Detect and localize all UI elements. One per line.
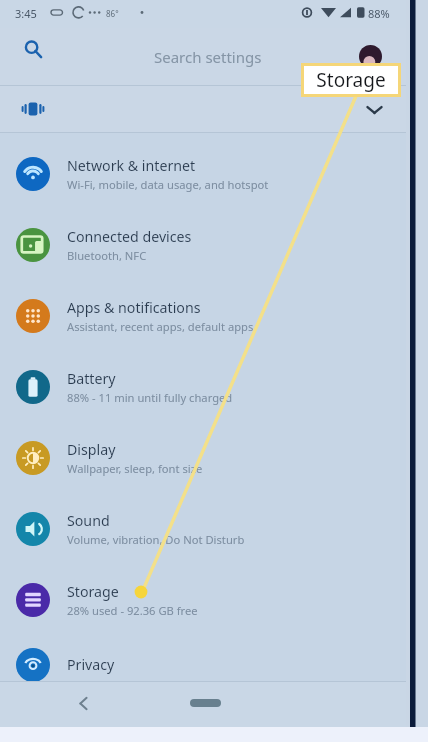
button[interactable]: Expand	[352, 86, 396, 132]
button[interactable]: Network & internet	[0, 138, 428, 209]
staticText: Bluetooth, NFC	[67, 248, 147, 263]
button[interactable]: Privacy	[0, 629, 428, 681]
staticText: Privacy	[67, 655, 115, 674]
staticText: Storage	[316, 67, 386, 93]
staticText: Wi-Fi, mobile, data usage, and hotspot	[67, 177, 269, 192]
staticText: Wallpaper, sleep, font size	[67, 461, 203, 476]
staticText: 86°	[106, 8, 119, 19]
staticText: Search settings	[154, 47, 262, 67]
button[interactable]: Connected devices	[0, 209, 428, 280]
button[interactable]: Storage	[0, 564, 428, 635]
button[interactable]: Vibration	[12, 86, 54, 132]
button[interactable]: Display	[0, 422, 428, 493]
button[interactable]: Battery	[0, 351, 428, 422]
button[interactable]: Apps & notifications	[0, 280, 428, 351]
staticText: 88% - 11 min until fully charged	[67, 390, 233, 405]
button[interactable]: Back	[63, 683, 103, 723]
button[interactable]: Account	[348, 28, 392, 85]
staticText: Storage	[67, 582, 119, 601]
staticText: 88%	[368, 6, 390, 21]
staticText: Battery	[67, 369, 116, 388]
staticText: Apps & notifications	[67, 298, 201, 317]
button[interactable]: Sound	[0, 493, 428, 564]
staticText: Connected devices	[67, 227, 192, 246]
staticText: Volume, vibration, Do Not Disturb	[67, 532, 245, 547]
staticText: Assistant, recent apps, default apps	[67, 319, 254, 334]
staticText: Display	[67, 440, 116, 459]
staticText: 3:45	[15, 6, 37, 21]
staticText: Network & internet	[67, 156, 196, 175]
button[interactable]: Home	[180, 683, 230, 723]
staticText: 28% used - 92.36 GB free	[67, 603, 198, 618]
staticText: Sound	[67, 511, 110, 530]
button[interactable]: Search	[12, 28, 54, 70]
